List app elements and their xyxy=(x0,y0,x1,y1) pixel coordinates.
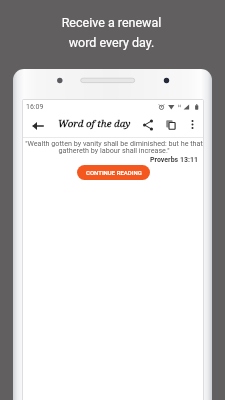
button[interactable]: Copy xyxy=(161,115,180,134)
staticText: Receive a renewal xyxy=(0,15,224,30)
staticText: CONTINUE READING xyxy=(86,169,142,176)
staticText: 16:09 xyxy=(26,103,44,111)
staticText: Word of the day xyxy=(58,117,131,130)
button[interactable]: More options xyxy=(183,115,202,134)
button[interactable]: Share xyxy=(138,115,157,134)
staticText: Proverbs 13:11 xyxy=(23,156,198,164)
button[interactable]: CONTINUE READING xyxy=(77,165,150,180)
staticText: "Wealth gotten by vanity shall be dimini… xyxy=(24,139,204,154)
staticText: word every day. xyxy=(0,35,224,50)
button[interactable]: Back xyxy=(28,116,47,135)
